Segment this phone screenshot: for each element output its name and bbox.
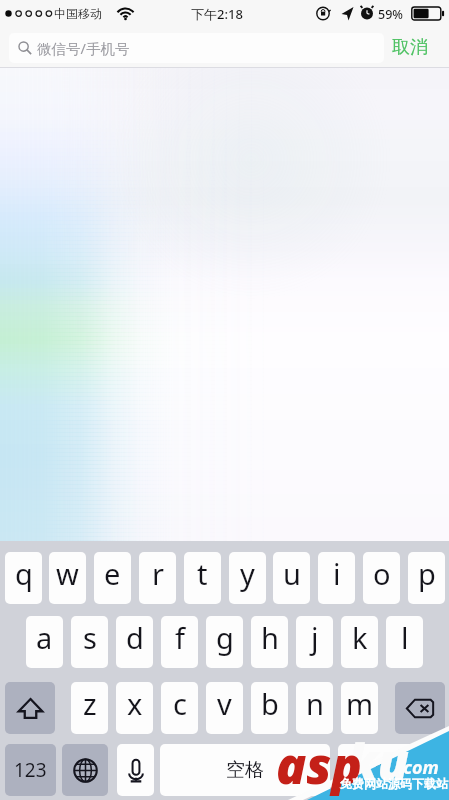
staticText: 取消 bbox=[392, 36, 428, 59]
staticText: 下午2:18 bbox=[191, 5, 243, 23]
staticText: t bbox=[197, 554, 208, 593]
button[interactable]: 空格 bbox=[160, 744, 330, 796]
staticText: d bbox=[126, 618, 144, 657]
staticText: j bbox=[311, 618, 319, 657]
button[interactable]: u bbox=[273, 552, 310, 604]
button[interactable]: l bbox=[386, 616, 423, 668]
staticText: n bbox=[306, 684, 324, 723]
button[interactable]: f bbox=[161, 616, 198, 668]
staticText: w bbox=[56, 554, 79, 593]
staticText: v bbox=[217, 684, 232, 723]
staticText: 微信号/手机号 bbox=[37, 38, 130, 58]
staticText: a bbox=[36, 618, 53, 657]
staticText: ku bbox=[347, 727, 409, 795]
button[interactable]: j bbox=[296, 616, 333, 668]
button[interactable]: s bbox=[71, 616, 108, 668]
button[interactable]: Dictation bbox=[117, 744, 154, 796]
button[interactable]: 123 bbox=[5, 744, 56, 796]
staticText: r bbox=[152, 554, 164, 593]
button[interactable]: e bbox=[94, 552, 131, 604]
staticText: .com bbox=[398, 755, 439, 780]
button[interactable]: r bbox=[139, 552, 176, 604]
button[interactable]: Next keyboard bbox=[62, 744, 108, 796]
button[interactable]: w bbox=[49, 552, 86, 604]
button[interactable]: i bbox=[318, 552, 355, 604]
button[interactable]: m bbox=[341, 682, 378, 734]
staticText: c bbox=[173, 684, 187, 723]
staticText: p bbox=[418, 554, 436, 593]
staticText: i bbox=[333, 554, 341, 593]
button[interactable]: o bbox=[363, 552, 400, 604]
staticText: 中国移动 bbox=[54, 6, 102, 21]
button[interactable]: g bbox=[206, 616, 243, 668]
staticText: z bbox=[83, 684, 97, 723]
staticText: 搜索 bbox=[373, 758, 411, 782]
staticText: b bbox=[261, 684, 279, 723]
button[interactable]: n bbox=[296, 682, 333, 734]
button[interactable]: x bbox=[116, 682, 153, 734]
staticText: y bbox=[240, 554, 255, 593]
button[interactable]: h bbox=[251, 616, 288, 668]
button[interactable]: b bbox=[251, 682, 288, 734]
staticText: g bbox=[216, 618, 234, 657]
button[interactable]: 微信号/手机号 bbox=[9, 33, 384, 63]
staticText: 123 bbox=[14, 757, 47, 783]
staticText: l bbox=[401, 618, 409, 657]
button[interactable]: p bbox=[408, 552, 445, 604]
staticText: x bbox=[127, 684, 143, 723]
button[interactable]: d bbox=[116, 616, 153, 668]
staticText: q bbox=[15, 554, 33, 593]
button[interactable]: k bbox=[341, 616, 378, 668]
button[interactable]: c bbox=[161, 682, 198, 734]
staticText: k bbox=[352, 618, 368, 657]
staticText: o bbox=[373, 554, 391, 593]
button[interactable]: v bbox=[206, 682, 243, 734]
staticText: h bbox=[261, 618, 279, 657]
staticText: e bbox=[104, 554, 121, 593]
staticText: 空格 bbox=[226, 758, 264, 782]
staticText: f bbox=[175, 618, 185, 657]
button[interactable]: a bbox=[26, 616, 63, 668]
button[interactable]: Shift bbox=[5, 682, 55, 734]
button[interactable]: z bbox=[71, 682, 108, 734]
button[interactable]: y bbox=[229, 552, 266, 604]
staticText: u bbox=[283, 554, 301, 593]
staticText: s bbox=[83, 618, 97, 657]
button[interactable]: Delete bbox=[395, 682, 445, 734]
staticText: asp bbox=[276, 731, 362, 799]
staticText: 免费网站源码下载站 bbox=[340, 776, 448, 791]
staticText: m bbox=[346, 684, 374, 723]
button[interactable]: q bbox=[5, 552, 42, 604]
button[interactable]: 取消 bbox=[392, 31, 444, 64]
staticText: 59% bbox=[378, 6, 403, 23]
button[interactable]: t bbox=[184, 552, 221, 604]
button[interactable]: 搜索 bbox=[338, 744, 445, 796]
